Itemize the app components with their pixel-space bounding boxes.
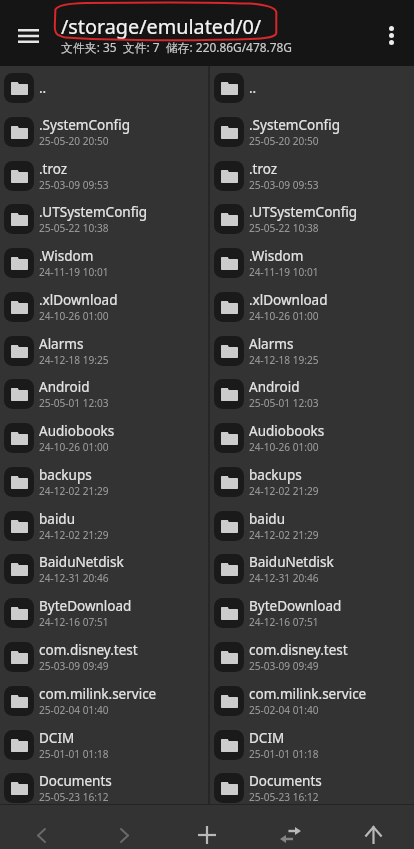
staticText: Android [39,378,90,396]
staticText: Documents [39,772,112,790]
staticText: 24-10-26 01:00 [249,440,319,454]
button[interactable]: .xlDownload [210,285,414,329]
staticText: .troz [39,160,68,178]
button[interactable]: .. [210,66,414,110]
button[interactable]: Menu [8,15,49,56]
button[interactable]: .Wisdom [210,241,414,285]
button[interactable]: Alarms [210,329,414,373]
button[interactable]: ByteDownload [0,591,208,635]
staticText: 24-12-18 19:25 [39,353,109,367]
staticText: ByteDownload [249,597,342,615]
staticText: Documents [249,772,322,790]
staticText: BaiduNetdisk [39,553,124,571]
button[interactable]: Forward [83,805,165,849]
staticText: 文件夹: 35 文件: 7 储存: 220.86G/478.78G [61,39,292,55]
staticText: Alarms [39,335,84,353]
button[interactable]: com.disney.test [210,635,414,679]
button[interactable]: Up [332,805,414,849]
staticText: Audiobooks [39,422,115,440]
staticText: /storage/emulated/0/ [61,13,262,40]
staticText: .xlDownload [39,291,118,309]
staticText: 25-03-09 09:49 [249,659,319,673]
button[interactable]: New [166,805,248,849]
staticText: 25-05-23 16:12 [39,790,109,804]
button[interactable]: com.disney.test [0,635,208,679]
staticText: .UTSystemConfig [249,203,358,221]
staticText: Android [249,378,300,396]
staticText: 25-03-09 09:49 [39,659,109,673]
button[interactable]: Audiobooks [210,416,414,460]
button[interactable]: backups [210,460,414,504]
button[interactable]: .SystemConfig [210,110,414,154]
staticText: 24-11-19 10:01 [249,265,319,279]
staticText: backups [39,466,92,484]
staticText: 25-05-20 20:50 [249,134,319,148]
staticText: 25-05-22 10:38 [39,221,109,235]
button[interactable]: BaiduNetdisk [210,547,414,591]
staticText: 25-03-09 09:53 [39,178,109,192]
staticText: 24-12-16 07:51 [249,615,319,629]
button[interactable]: Documents [0,766,208,804]
button[interactable]: Transfer [249,805,331,849]
staticText: .SystemConfig [249,116,340,134]
button[interactable]: DCIM [0,723,208,767]
staticText: 25-05-01 12:03 [39,396,109,410]
staticText: 24-10-26 01:00 [39,440,109,454]
button[interactable]: ByteDownload [210,591,414,635]
staticText: 25-02-04 01:40 [249,703,319,717]
staticText: DCIM [249,729,285,747]
staticText: backups [249,466,302,484]
staticText: DCIM [39,729,75,747]
staticText: 24-12-16 07:51 [39,615,109,629]
button[interactable]: com.milink.service [0,679,208,723]
staticText: 25-05-20 20:50 [39,134,109,148]
button[interactable]: DCIM [210,723,414,767]
button[interactable]: baidu [0,504,208,548]
button[interactable]: Audiobooks [0,416,208,460]
staticText: .Wisdom [249,247,304,265]
staticText: .troz [249,160,278,178]
staticText: .UTSystemConfig [39,203,148,221]
button[interactable]: Back [0,805,82,849]
staticText: 24-12-18 19:25 [249,353,319,367]
button[interactable]: Android [0,372,208,416]
staticText: 24-12-02 21:29 [249,528,319,542]
staticText: .xlDownload [249,291,328,309]
button[interactable]: baidu [210,504,414,548]
staticText: 24-10-26 01:00 [249,309,319,323]
staticText: com.disney.test [39,641,138,659]
button[interactable]: .UTSystemConfig [210,197,414,241]
button[interactable]: .xlDownload [0,285,208,329]
staticText: 24-12-02 21:29 [39,484,109,498]
button[interactable]: Documents [210,766,414,804]
button[interactable]: .Wisdom [0,241,208,285]
staticText: 24-12-02 21:29 [39,528,109,542]
staticText: com.disney.test [249,641,348,659]
staticText: 24-10-26 01:00 [39,309,109,323]
staticText: com.milink.service [39,685,157,703]
staticText: 24-12-31 20:46 [249,571,319,585]
button[interactable]: .troz [210,154,414,198]
staticText: 24-11-19 10:01 [39,265,109,279]
button[interactable]: BaiduNetdisk [0,547,208,591]
button[interactable]: .UTSystemConfig [0,197,208,241]
staticText: Audiobooks [249,422,325,440]
button[interactable]: Android [210,372,414,416]
staticText: .. [39,79,47,97]
button[interactable]: .SystemConfig [0,110,208,154]
staticText: 25-01-01 01:18 [249,747,319,761]
staticText: 24-12-02 21:29 [249,484,319,498]
button[interactable]: .. [0,66,208,110]
staticText: .Wisdom [39,247,94,265]
staticText: .. [249,79,257,97]
staticText: 24-12-31 20:46 [39,571,109,585]
button[interactable]: .troz [0,154,208,198]
staticText: 25-03-09 09:53 [249,178,319,192]
button[interactable]: backups [0,460,208,504]
button[interactable]: com.milink.service [210,679,414,723]
staticText: 25-05-23 16:12 [249,790,319,804]
staticText: 25-02-04 01:40 [39,703,109,717]
button[interactable]: More options [371,15,412,56]
button[interactable]: Alarms [0,329,208,373]
staticText: baidu [39,510,76,528]
